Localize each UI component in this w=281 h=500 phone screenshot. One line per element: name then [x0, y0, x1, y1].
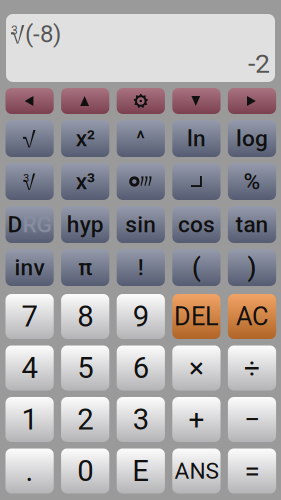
- staticText: x²: [76, 125, 95, 152]
- button[interactable]: 7: [5, 294, 54, 339]
- button[interactable]: 0: [61, 448, 109, 493]
- button[interactable]: E: [117, 448, 165, 493]
- button[interactable]: .: [5, 448, 54, 493]
- staticText: !: [138, 254, 144, 281]
- button[interactable]: =: [228, 448, 276, 493]
- staticText: ÷: [244, 352, 260, 384]
- button[interactable]: %: [228, 163, 276, 200]
- staticText: 5: [77, 351, 93, 385]
- staticText: DEL: [174, 302, 219, 331]
- button[interactable]: ×: [172, 345, 220, 390]
- button[interactable]: !: [117, 249, 165, 286]
- button[interactable]: ): [228, 249, 276, 286]
- button[interactable]: x²: [61, 120, 109, 157]
- button[interactable]: ANS: [172, 448, 220, 493]
- staticText: .: [26, 454, 34, 488]
- staticText: ): [247, 253, 256, 282]
- staticText: 0: [77, 454, 93, 488]
- staticText: +: [188, 403, 204, 436]
- staticText: (-8): [25, 20, 61, 48]
- button[interactable]: hyp: [61, 206, 109, 243]
- button[interactable]: 6: [117, 345, 165, 390]
- staticText: 1: [22, 402, 38, 437]
- button[interactable]: cos: [172, 206, 220, 243]
- button[interactable]: Cube root: [5, 163, 54, 200]
- staticText: tan: [235, 211, 268, 238]
- button[interactable]: tan: [228, 206, 276, 243]
- button[interactable]: Move left: [5, 88, 54, 114]
- button[interactable]: 8: [61, 294, 109, 339]
- button[interactable]: 9: [117, 294, 165, 339]
- staticText: 7: [22, 299, 38, 334]
- staticText: ANS: [174, 458, 218, 484]
- button[interactable]: Move up: [61, 88, 109, 114]
- button[interactable]: sin: [117, 206, 165, 243]
- staticText: 2: [77, 402, 93, 437]
- button[interactable]: Right angle: [172, 163, 220, 200]
- staticText: π: [78, 254, 92, 281]
- staticText: cos: [178, 211, 215, 238]
- button[interactable]: Move right: [228, 88, 276, 114]
- staticText: (: [192, 253, 201, 282]
- button[interactable]: log: [228, 120, 276, 157]
- button[interactable]: 5: [61, 345, 109, 390]
- button[interactable]: ÷: [228, 345, 276, 390]
- staticText: log: [236, 125, 268, 152]
- button[interactable]: 3: [117, 397, 165, 442]
- staticText: −: [244, 403, 260, 436]
- button[interactable]: 2: [61, 397, 109, 442]
- staticText: 6: [133, 351, 149, 385]
- button[interactable]: 1: [5, 397, 54, 442]
- button[interactable]: AC: [228, 294, 276, 339]
- staticText: %: [243, 168, 260, 195]
- staticText: RG: [23, 211, 52, 238]
- staticText: sin: [125, 211, 156, 238]
- staticText: 9: [133, 299, 149, 334]
- staticText: ^: [136, 127, 145, 150]
- button[interactable]: +: [172, 397, 220, 442]
- button[interactable]: ^: [117, 120, 165, 157]
- staticText: hyp: [67, 211, 104, 238]
- button[interactable]: −: [228, 397, 276, 442]
- button[interactable]: DEL: [172, 294, 220, 339]
- staticText: 8: [77, 299, 93, 334]
- staticText: D: [8, 211, 23, 238]
- button[interactable]: Settings: [117, 88, 165, 114]
- button[interactable]: Degrees minutes seconds: [117, 163, 165, 200]
- staticText: ×: [189, 352, 204, 384]
- button[interactable]: 4: [5, 345, 54, 390]
- button[interactable]: inv: [5, 249, 54, 286]
- button[interactable]: π: [61, 249, 109, 286]
- button[interactable]: Square root: [5, 120, 54, 157]
- staticText: AC: [236, 302, 268, 331]
- staticText: -2: [248, 48, 270, 79]
- staticText: 3: [23, 172, 29, 185]
- staticText: =: [244, 455, 259, 487]
- button[interactable]: (: [172, 249, 220, 286]
- staticText: x³: [76, 168, 95, 195]
- button[interactable]: x³: [61, 163, 109, 200]
- staticText: 3: [11, 23, 18, 37]
- staticText: inv: [15, 254, 45, 281]
- staticText: 3: [133, 402, 149, 437]
- button[interactable]: ln: [172, 120, 220, 157]
- staticText: ln: [187, 125, 206, 152]
- button[interactable]: Move down: [172, 88, 220, 114]
- staticText: 4: [22, 351, 38, 385]
- staticText: E: [132, 454, 149, 488]
- button[interactable]: D: [5, 206, 54, 243]
